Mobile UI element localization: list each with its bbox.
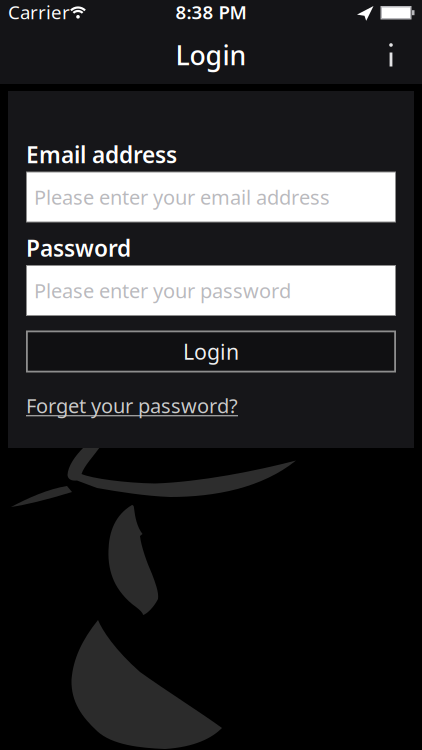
button[interactable]: Login [26,330,396,372]
staticText: Please enter your password [34,277,291,304]
staticText: Login [175,37,246,73]
button[interactable]: Please enter your email address [26,171,396,222]
staticText: 8:38 PM [175,0,246,24]
staticText: Login [183,337,239,366]
staticText: Email address [26,139,177,169]
button[interactable]: Forget your password? [26,393,238,417]
button[interactable] [370,26,414,78]
button[interactable]: Please enter your password [26,265,396,316]
staticText: Carrier [8,0,70,24]
staticText: Forget your password? [26,392,238,419]
staticText: Password [26,233,131,263]
staticText: Please enter your email address [34,184,330,210]
